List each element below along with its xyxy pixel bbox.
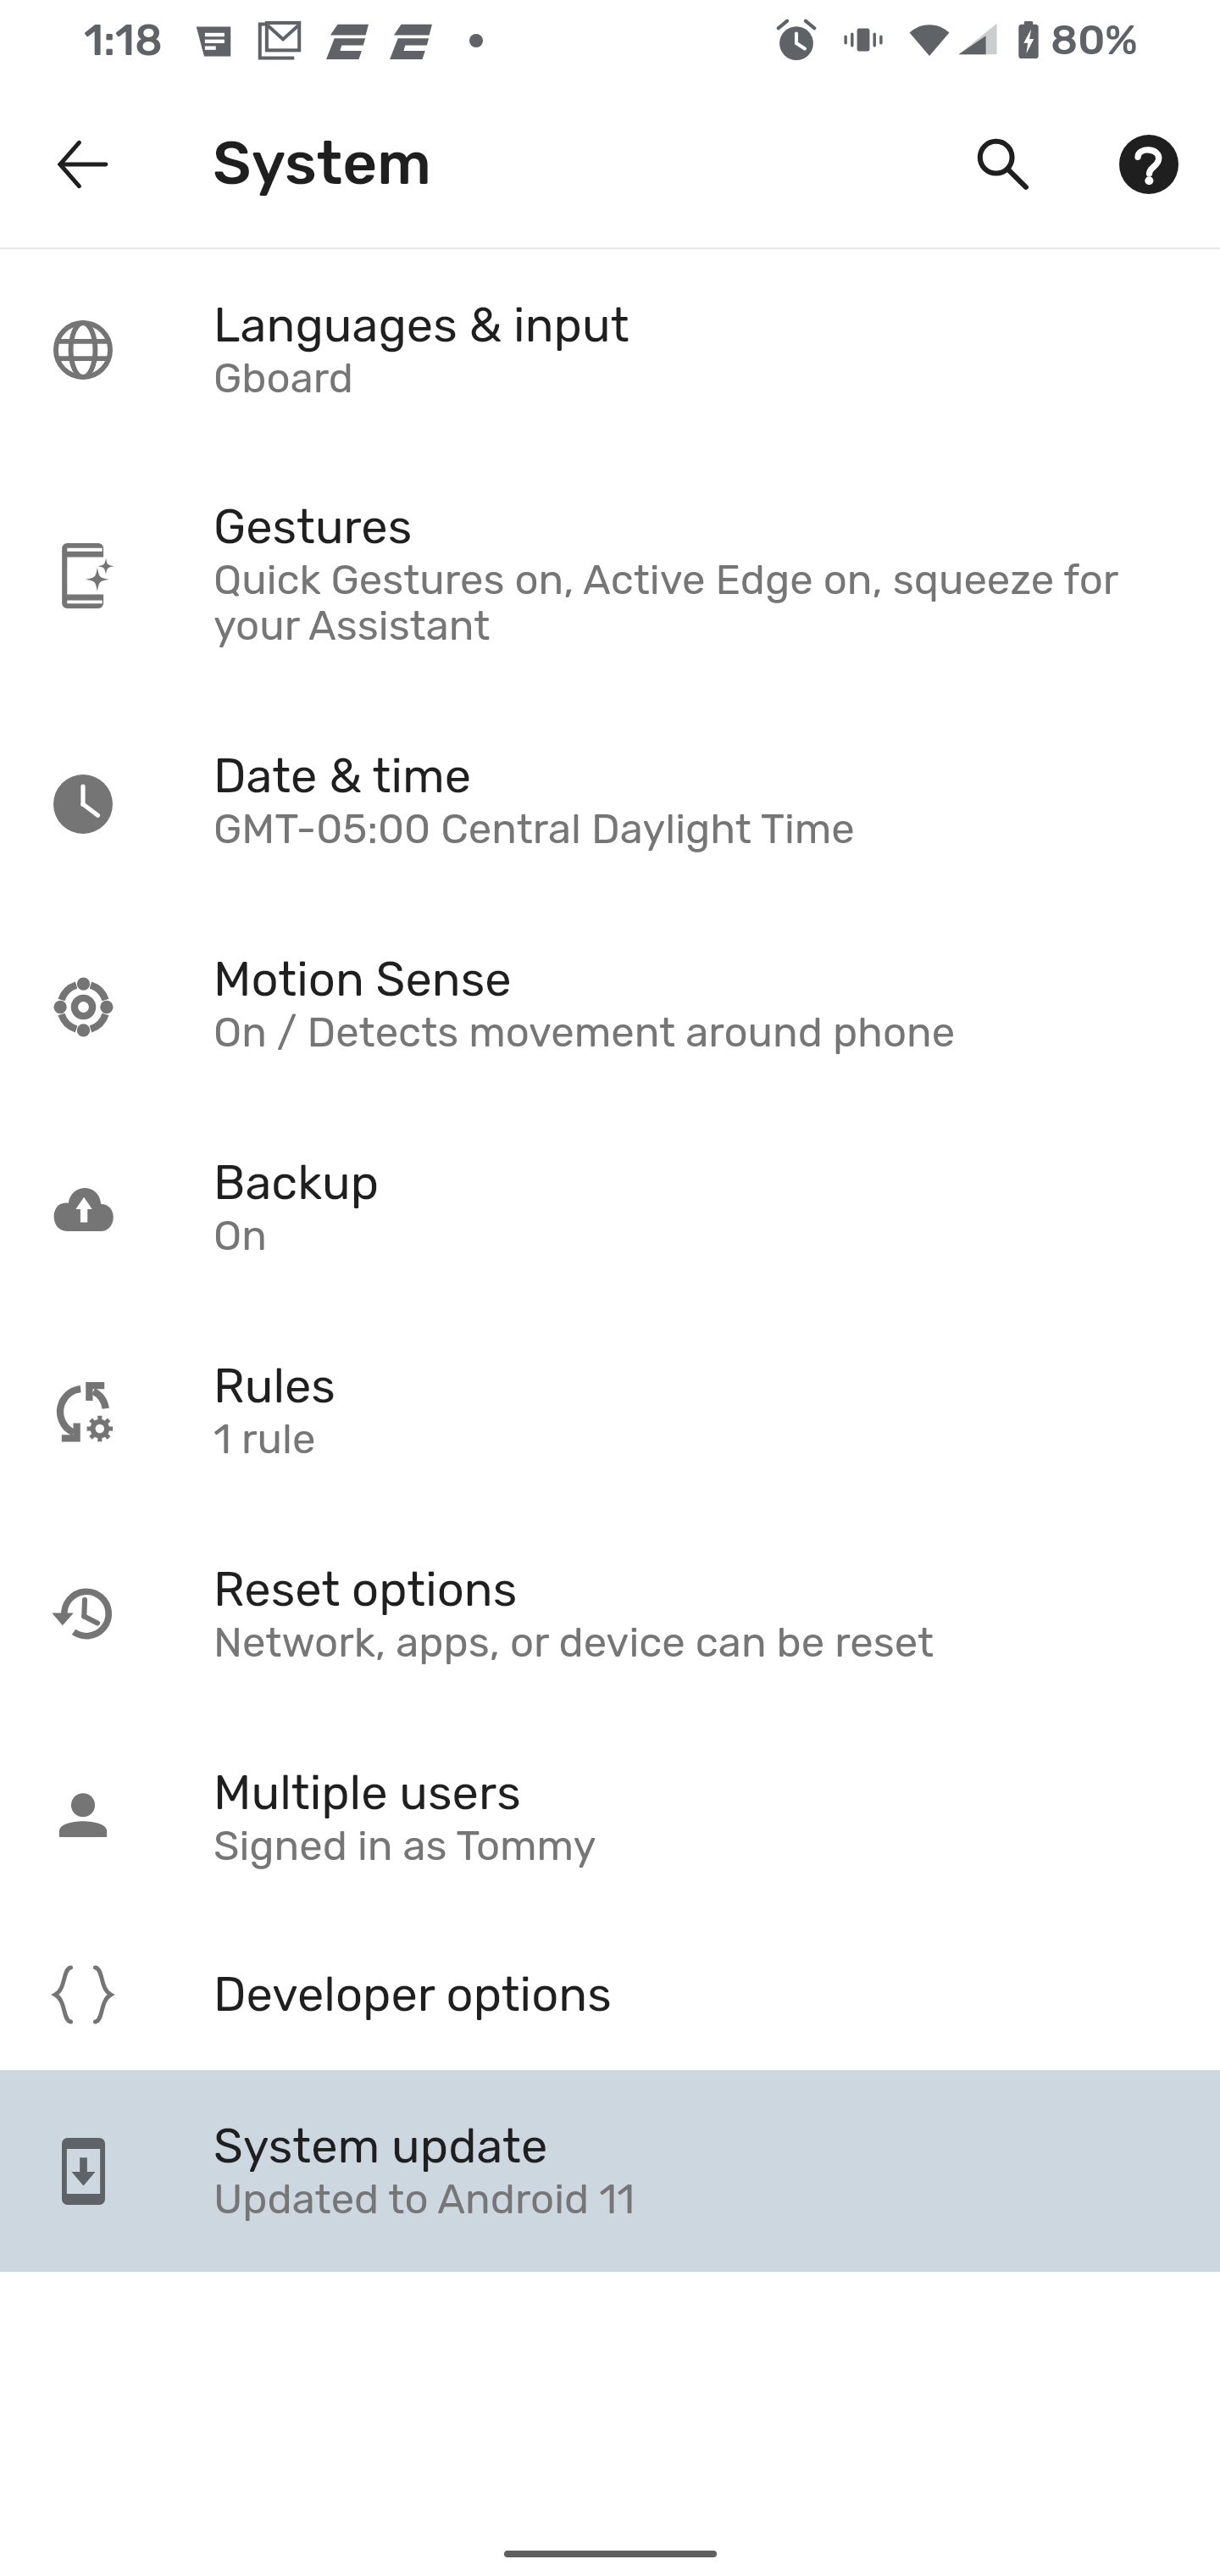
staticText: 1 rule (213, 1414, 316, 1463)
staticText: System (213, 128, 432, 199)
button[interactable]: System update (0, 2070, 1220, 2272)
button[interactable]: Rules (0, 1309, 1220, 1513)
staticText: 1:18 (84, 15, 163, 65)
button[interactable]: Languages & input (0, 249, 1220, 451)
staticText: Quick Gestures on, Active Edge on, squee… (213, 555, 1119, 651)
staticText: On / Detects movement around phone (213, 1008, 956, 1057)
button[interactable]: Developer options (0, 1919, 1220, 2070)
button[interactable]: Reset options (0, 1513, 1220, 1716)
staticText: Languages & input (213, 297, 629, 353)
staticText: GMT-05:00 Central Daylight Time (213, 804, 855, 853)
button[interactable]: Back (32, 114, 132, 214)
button[interactable]: Gestures (0, 451, 1220, 699)
staticText: System update (213, 2118, 548, 2174)
staticText: Motion Sense (213, 952, 512, 1008)
staticText: Network, apps, or device can be reset (213, 1618, 934, 1667)
staticText: Multiple users (213, 1765, 521, 1821)
staticText: 80% (1051, 15, 1138, 64)
staticText: Gestures (213, 499, 413, 555)
staticText: Developer options (213, 1967, 612, 2023)
staticText: Signed in as Tommy (213, 1821, 596, 1870)
button[interactable]: Multiple users (0, 1716, 1220, 1919)
button[interactable]: Help (1099, 114, 1199, 214)
staticText: Rules (213, 1358, 335, 1414)
staticText: Date & time (213, 748, 472, 804)
button[interactable]: Date & time (0, 699, 1220, 902)
staticText: On (213, 1211, 267, 1260)
staticText: Reset options (213, 1562, 518, 1618)
button[interactable]: Motion Sense (0, 902, 1220, 1106)
button[interactable]: Search (950, 114, 1050, 214)
button[interactable]: Backup (0, 1106, 1220, 1309)
staticText: Backup (213, 1155, 380, 1211)
staticText: Updated to Android 11 (213, 2174, 635, 2223)
staticText: Gboard (213, 353, 353, 402)
